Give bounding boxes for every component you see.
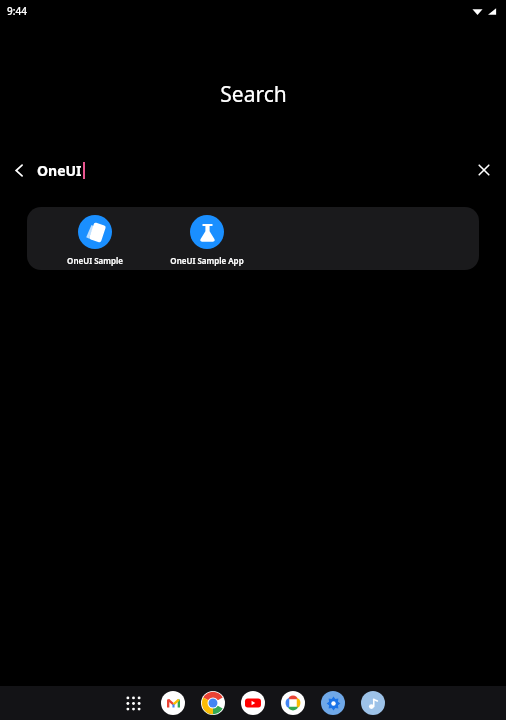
button[interactable]: All apps [119, 689, 147, 717]
staticText: 9:44 [7, 4, 27, 18]
button[interactable]: Clear search [470, 156, 498, 184]
staticText: Search [220, 80, 287, 109]
button[interactable]: Settings [319, 689, 347, 717]
button[interactable]: OneUI Sample [39, 207, 151, 270]
button[interactable]: OneUI [37, 151, 470, 189]
button[interactable]: Gmail [159, 689, 187, 717]
button[interactable]: Photos [279, 689, 307, 717]
staticText: OneUI Sample [67, 255, 123, 266]
button[interactable]: Music [359, 689, 387, 717]
button[interactable]: Chrome [199, 689, 227, 717]
button[interactable]: OneUI Sample App [151, 207, 263, 270]
button[interactable]: YouTube [239, 689, 267, 717]
button[interactable]: Back [6, 157, 32, 183]
staticText: OneUI Sample App [170, 255, 244, 266]
staticText: OneUI [37, 161, 82, 180]
